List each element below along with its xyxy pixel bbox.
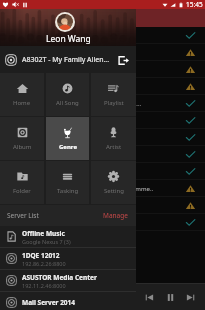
button[interactable]: ASUSTOR Media Center — [0, 270, 136, 291]
button[interactable] — [0, 78, 205, 95]
button[interactable]: Mail Server 2014 — [0, 292, 136, 310]
staticText: Folder — [13, 187, 31, 195]
button[interactable]: Manage — [95, 207, 136, 224]
button[interactable]: Cos... — [0, 95, 205, 112]
staticText: 15:45 — [186, 0, 203, 9]
button[interactable]: A8302T - My Family Allen... — [0, 46, 136, 73]
staticText: Tasking — [57, 187, 79, 195]
button[interactable]: Pause — [160, 287, 180, 307]
staticText: All Song — [56, 99, 79, 107]
staticText: Genre — [59, 143, 77, 151]
button[interactable] — [0, 197, 205, 214]
button[interactable]: Tasking — [46, 161, 89, 204]
staticText: 192.11.2.46:8000 — [22, 282, 66, 289]
button[interactable]: d Last Summe.. — [0, 180, 205, 197]
button[interactable]: Playlist — [91, 73, 136, 116]
button[interactable] — [0, 44, 205, 61]
staticText: d Last Summe.. — [110, 185, 154, 193]
button[interactable]: All Song — [46, 73, 89, 116]
staticText: ASUSTOR Media Center — [22, 273, 97, 282]
button[interactable]: Logout — [114, 51, 132, 69]
button[interactable]: Previous — [139, 287, 159, 307]
button[interactable] — [0, 27, 205, 44]
staticText: A8302T - My Family Allen... — [22, 55, 114, 65]
button[interactable]: Setting — [91, 161, 136, 204]
staticText: Leon Wang — [46, 33, 91, 45]
staticText: Google Nexus 7 (3) — [22, 238, 71, 245]
button[interactable] — [0, 129, 205, 146]
staticText: 192.86.2.26:8800 — [22, 260, 66, 267]
staticText: Offline Music — [22, 229, 65, 238]
staticText: Playlist — [104, 99, 124, 107]
staticText: Setting — [104, 187, 124, 195]
button[interactable]: Folder — [0, 161, 44, 204]
button[interactable]: Profile — [55, 12, 75, 32]
button[interactable]: Artist — [91, 117, 136, 160]
button[interactable]: Offline Music — [0, 226, 136, 247]
button[interactable]: Genre — [46, 117, 89, 160]
button[interactable] — [0, 112, 205, 129]
staticText: Mail Server 2014 — [22, 298, 76, 307]
staticText: Home — [13, 99, 31, 107]
button[interactable]: Next — [180, 287, 200, 307]
button[interactable]: 1DQE 12012 — [0, 248, 136, 269]
staticText: 1DQE 12012 — [22, 251, 60, 260]
staticText: Cos... — [126, 100, 142, 108]
button[interactable]: Album — [0, 117, 44, 160]
button[interactable] — [0, 163, 205, 180]
staticText: Album — [13, 143, 32, 151]
button[interactable] — [0, 214, 205, 231]
button[interactable]: Home — [0, 73, 44, 116]
staticText: Server List — [7, 211, 39, 220]
button[interactable] — [0, 146, 205, 163]
staticText: Artist — [106, 143, 122, 151]
staticText: Manage — [103, 211, 128, 220]
button[interactable] — [0, 61, 205, 78]
